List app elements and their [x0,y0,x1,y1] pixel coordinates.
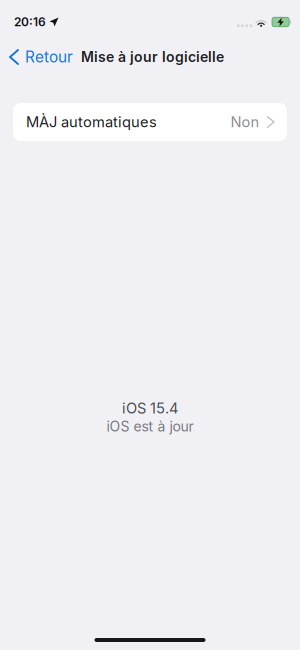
staticText: Non [230,113,259,131]
staticText: MÀJ automatiques [26,113,157,131]
button[interactable]: MÀJ automatiques [13,103,287,141]
button[interactable]: Retour [0,40,81,74]
staticText: Mise à jour logicielle [81,48,224,65]
staticText: iOS est à jour [106,418,193,435]
staticText: iOS 15.4 [122,399,178,417]
staticText: 20:16 [14,15,46,29]
staticText: Retour [25,48,73,66]
